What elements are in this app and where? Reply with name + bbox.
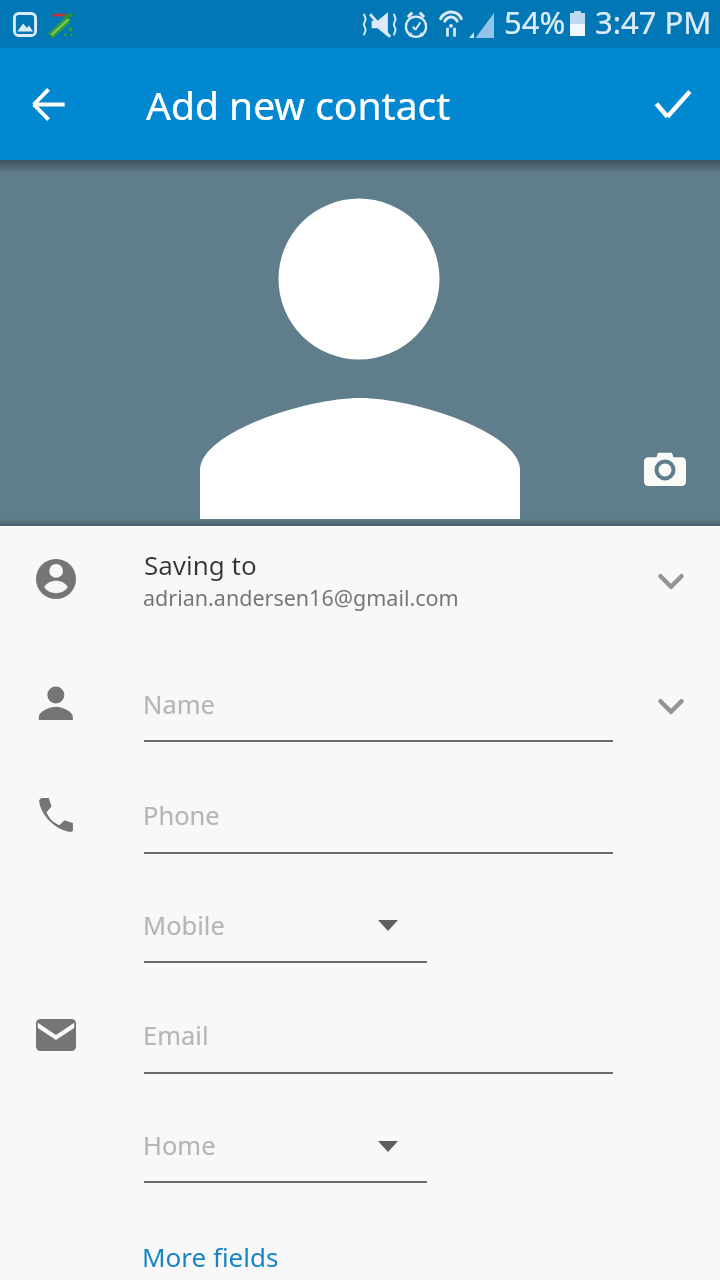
button[interactable]: Phone bbox=[0, 766, 720, 876]
button[interactable]: Name bbox=[0, 656, 720, 766]
button[interactable]: Mobile bbox=[0, 876, 720, 986]
staticText: More fields bbox=[142, 1239, 279, 1274]
staticText: 54% bbox=[504, 1, 566, 43]
staticText: Add new contact bbox=[146, 78, 451, 131]
button[interactable]: More fields bbox=[0, 1216, 720, 1280]
button[interactable]: Choose account bbox=[645, 555, 697, 607]
staticText: Email bbox=[143, 1018, 209, 1053]
staticText: adrian.andersen16@gmail.com bbox=[143, 583, 459, 612]
staticText: Home bbox=[143, 1128, 216, 1163]
staticText: 3:47 PM bbox=[595, 1, 712, 43]
button[interactable]: Navigate up bbox=[12, 68, 84, 140]
button[interactable]: Saving to bbox=[0, 526, 720, 656]
button[interactable]: Email bbox=[0, 986, 720, 1096]
staticText: Name bbox=[143, 687, 215, 722]
button[interactable]: Save contact bbox=[637, 68, 709, 140]
staticText: Saving to bbox=[144, 547, 257, 582]
staticText: Phone bbox=[143, 798, 220, 833]
button[interactable]: Home bbox=[0, 1096, 720, 1206]
staticText: Mobile bbox=[143, 908, 225, 943]
button[interactable]: Expand name fields bbox=[645, 680, 697, 732]
button[interactable]: Change photo bbox=[635, 437, 695, 497]
